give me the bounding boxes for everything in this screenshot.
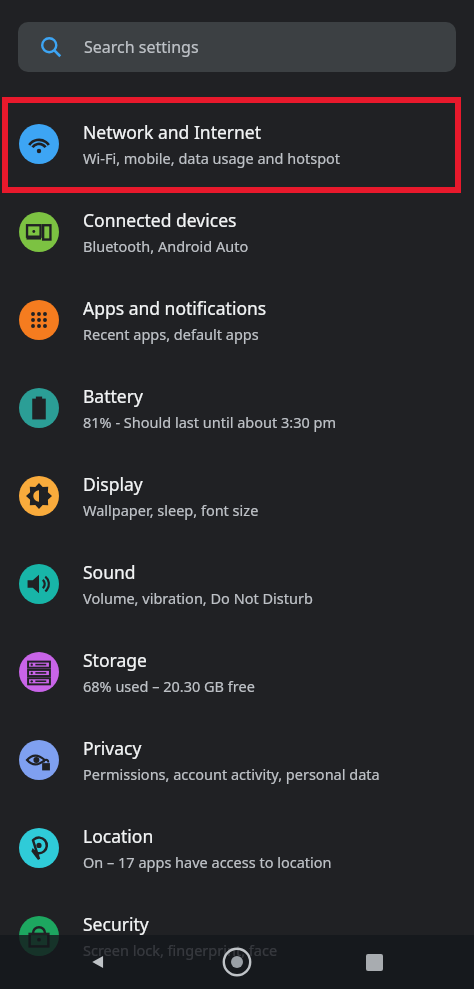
button[interactable]: Connected devices <box>0 188 474 276</box>
button[interactable]: Location <box>0 804 474 892</box>
button[interactable]: Back <box>78 942 118 982</box>
button[interactable]: Sound <box>0 540 474 628</box>
staticText: Connected devices <box>83 208 237 232</box>
button[interactable]: Display <box>0 452 474 540</box>
staticText: Storage <box>83 648 147 672</box>
staticText: 68% used – 20.30 GB free <box>83 676 255 696</box>
staticText: Location <box>83 824 154 848</box>
staticText: Bluetooth, Android Auto <box>83 236 249 256</box>
button[interactable]: Security <box>0 892 474 980</box>
staticText: Network and Internet <box>83 120 262 144</box>
button[interactable]: Privacy <box>0 716 474 804</box>
button[interactable]: Network and Internet <box>0 100 474 188</box>
staticText: Apps and notifications <box>83 296 267 320</box>
staticText: Display <box>83 472 143 496</box>
staticText: Recent apps, default apps <box>83 324 259 344</box>
button[interactable]: Recent apps <box>354 942 394 982</box>
staticText: Permissions, account activity, personal … <box>83 764 380 784</box>
staticText: Battery <box>83 384 143 408</box>
staticText: Screen lock, fingerprint, face <box>83 940 278 960</box>
button[interactable]: Home <box>215 940 259 984</box>
button[interactable]: Storage <box>0 628 474 716</box>
staticText: On – 17 apps have access to location <box>83 852 332 872</box>
staticText: Search settings <box>84 36 199 58</box>
staticText: 81% - Should last until about 3:30 pm <box>83 412 336 432</box>
staticText: Privacy <box>83 736 142 760</box>
button[interactable]: Battery <box>0 364 474 452</box>
staticText: Sound <box>83 560 136 584</box>
staticText: Wi-Fi, mobile, data usage and hotspot <box>83 148 341 168</box>
staticText: Wallpaper, sleep, font size <box>83 500 259 520</box>
staticText: Volume, vibration, Do Not Disturb <box>83 588 313 608</box>
button[interactable]: Apps and notifications <box>0 276 474 364</box>
staticText: Security <box>83 912 149 936</box>
button[interactable]: Search settings <box>18 22 456 72</box>
